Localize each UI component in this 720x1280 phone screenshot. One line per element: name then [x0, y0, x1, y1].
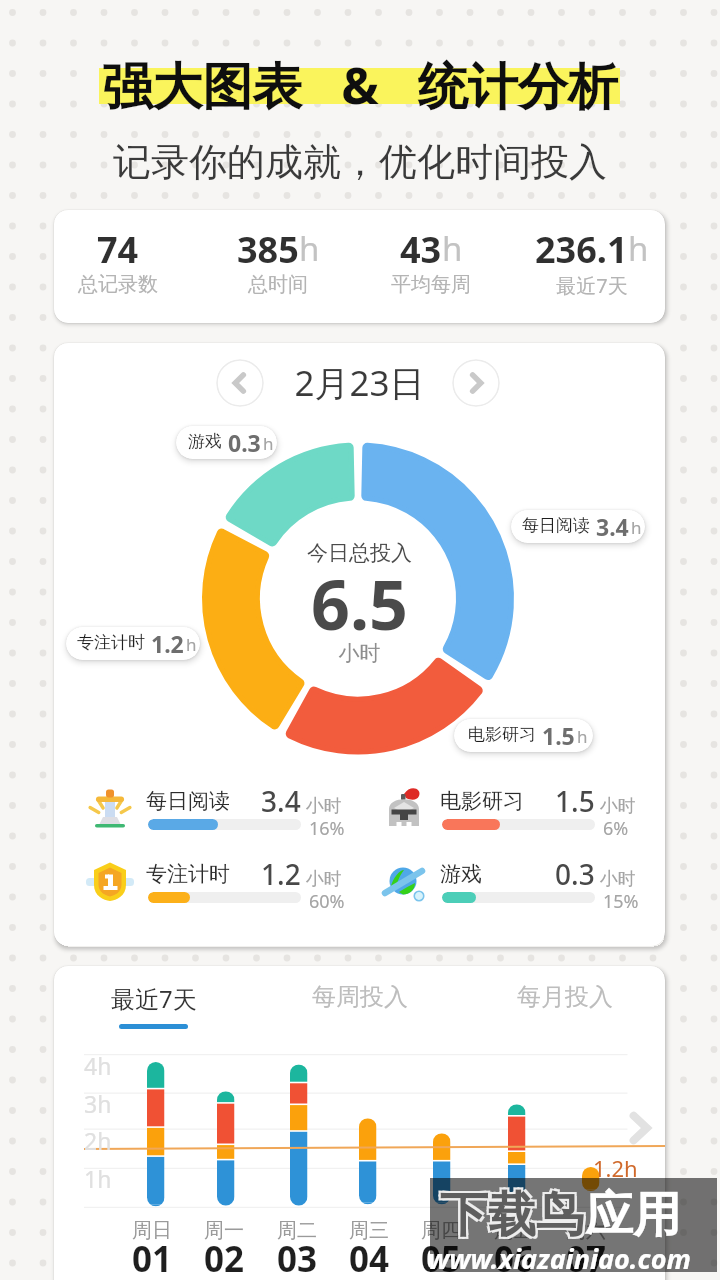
- staticText: 周二: [252, 1218, 342, 1243]
- staticText: 6%: [603, 816, 629, 841]
- staticText: 3.4: [261, 782, 301, 820]
- staticText: h: [299, 226, 320, 271]
- staticText: 3.4: [596, 511, 629, 542]
- button[interactable]: 每月投入: [516, 982, 613, 1012]
- staticText: 385: [237, 225, 299, 274]
- staticText: 01: [107, 1235, 197, 1280]
- staticText: 1.5: [555, 782, 595, 820]
- staticText: 每日阅读: [522, 515, 590, 536]
- staticText: 周六: [541, 1218, 631, 1243]
- staticText: 小时: [54, 640, 665, 666]
- staticText: 2月23日: [54, 359, 665, 407]
- staticText: 06: [469, 1235, 559, 1280]
- staticText: 0.3: [228, 427, 261, 458]
- staticText: 最近7天: [507, 272, 677, 299]
- staticText: 周三: [324, 1218, 414, 1243]
- staticText: 05: [396, 1235, 486, 1280]
- button[interactable]: 每日阅读: [511, 510, 645, 543]
- staticText: h: [577, 725, 588, 748]
- button[interactable]: 电影研习: [454, 719, 593, 752]
- staticText: 43: [400, 225, 442, 274]
- staticText: 3h: [84, 1088, 112, 1119]
- staticText: 小时: [595, 866, 636, 891]
- staticText: 下载鸟: [438, 1187, 582, 1247]
- staticText: 60%: [309, 889, 345, 914]
- staticText: 16%: [309, 816, 345, 841]
- staticText: 总时间: [193, 272, 363, 297]
- staticText: 今日总投入: [54, 540, 665, 566]
- staticText: 应用: [585, 1185, 681, 1245]
- staticText: 1.2: [261, 855, 301, 893]
- staticText: 小时: [301, 793, 342, 818]
- staticText: 1.5: [542, 720, 575, 751]
- staticText: 07: [541, 1235, 631, 1280]
- staticText: 02: [179, 1235, 269, 1280]
- button[interactable]: Previous day: [216, 359, 264, 407]
- staticText: 03: [252, 1235, 342, 1280]
- staticText: 游戏: [188, 431, 222, 452]
- staticText: 游戏: [440, 861, 482, 887]
- staticText: 专注计时: [77, 632, 145, 653]
- staticText: 下载鸟: [438, 1183, 582, 1243]
- button[interactable]: 385: [193, 225, 363, 305]
- button[interactable]: 专注计时: [66, 627, 200, 660]
- staticText: 0.3: [555, 855, 595, 893]
- button[interactable]: 电影研习: [379, 779, 664, 843]
- staticText: 周一: [179, 1218, 269, 1243]
- staticText: 电影研习: [440, 788, 524, 814]
- button[interactable]: 43: [346, 225, 516, 305]
- button[interactable]: 游戏: [176, 426, 277, 459]
- staticText: 1.2h: [593, 1153, 638, 1183]
- button[interactable]: 236.1: [507, 225, 677, 305]
- button[interactable]: 每日阅读: [85, 779, 370, 843]
- staticText: 1.2: [151, 628, 184, 659]
- staticText: 周日: [107, 1218, 197, 1243]
- button[interactable]: Next page: [616, 1106, 660, 1150]
- button[interactable]: 每周投入: [311, 982, 408, 1012]
- staticText: 236.1: [535, 225, 628, 274]
- staticText: www.xiazainiao.com: [428, 1240, 691, 1277]
- staticText: 每日阅读: [146, 788, 230, 814]
- staticText: 1h: [84, 1163, 112, 1194]
- staticText: 小时: [595, 793, 636, 818]
- staticText: 下载鸟: [442, 1183, 586, 1243]
- button[interactable]: 游戏: [379, 852, 664, 916]
- button[interactable]: 专注计时: [85, 852, 370, 916]
- staticText: 总记录数: [33, 272, 203, 297]
- staticText: 04: [324, 1235, 414, 1280]
- staticText: 2h: [84, 1125, 112, 1156]
- staticText: 最近7天: [111, 982, 197, 1015]
- staticText: h: [631, 516, 642, 539]
- button[interactable]: Next day: [452, 359, 500, 407]
- staticText: 每月投入: [517, 982, 613, 1012]
- staticText: 周五: [469, 1218, 559, 1243]
- staticText: 电影研习: [468, 724, 536, 745]
- staticText: 6.5: [54, 557, 665, 650]
- staticText: 记录你的成就，优化时间投入: [0, 138, 720, 186]
- button[interactable]: 最近7天: [105, 982, 202, 1020]
- staticText: h: [186, 633, 197, 656]
- staticText: 下载鸟: [440, 1185, 584, 1245]
- staticText: 专注计时: [146, 861, 230, 887]
- staticText: 小时: [301, 866, 342, 891]
- staticText: h: [628, 226, 649, 271]
- staticText: 平均每周: [346, 272, 516, 297]
- staticText: 74: [97, 225, 139, 274]
- staticText: 强大图表 & 统计分析: [0, 51, 720, 119]
- staticText: 4h: [84, 1050, 112, 1081]
- staticText: 下载鸟: [442, 1187, 586, 1247]
- staticText: h: [442, 226, 463, 271]
- button[interactable]: 74: [33, 225, 203, 305]
- staticText: 每周投入: [312, 982, 408, 1012]
- staticText: 15%: [603, 889, 639, 914]
- staticText: h: [263, 432, 274, 455]
- staticText: 周四: [396, 1218, 486, 1243]
